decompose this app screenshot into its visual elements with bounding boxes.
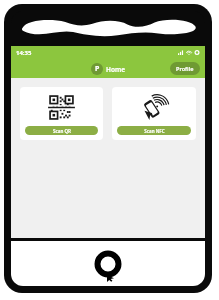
button[interactable]: P — [91, 63, 125, 75]
button[interactable]: Scan NFC tag — [112, 87, 196, 140]
button[interactable]: Profile — [170, 62, 200, 75]
button[interactable]: Scan QR — [25, 126, 98, 135]
other: Scan QR code — [25, 92, 98, 122]
staticText: P — [95, 64, 100, 74]
staticText: Scan NFC — [144, 128, 165, 134]
button[interactable]: Home button — [95, 251, 121, 277]
button[interactable]: Scan NFC — [117, 126, 191, 135]
staticText: Home — [106, 65, 125, 74]
button[interactable]: Scan QR code — [20, 87, 103, 140]
staticText: 14:35 — [16, 49, 32, 57]
staticText: Profile — [176, 65, 194, 72]
other: Scan NFC tag — [117, 92, 191, 122]
staticText: Scan QR — [53, 128, 71, 134]
